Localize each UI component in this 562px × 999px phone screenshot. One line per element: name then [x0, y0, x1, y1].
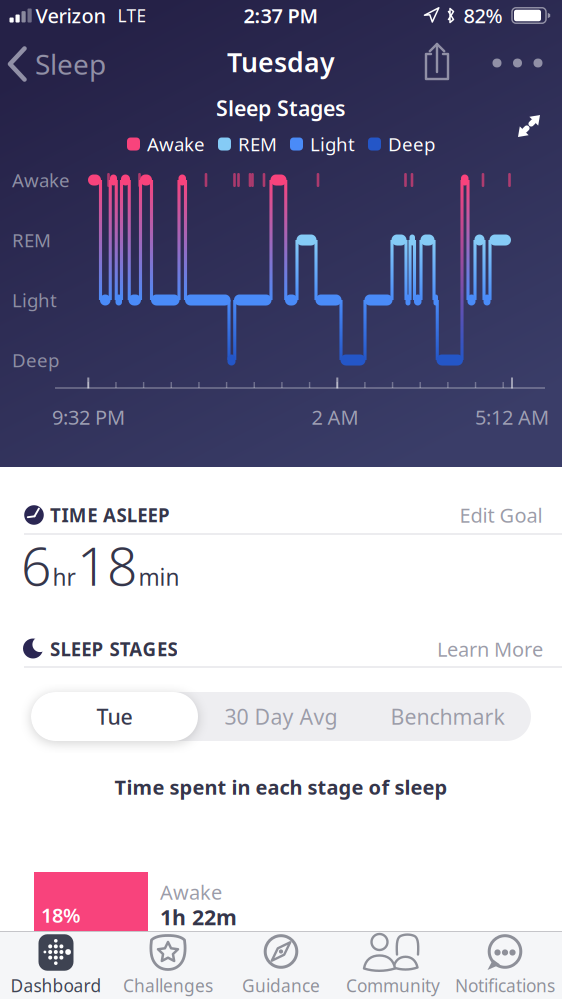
button[interactable] — [513, 110, 545, 142]
staticText: Learn More — [437, 636, 543, 662]
staticText: 1h 22m — [160, 903, 237, 931]
staticText: Light — [310, 132, 355, 156]
staticText: 18 — [77, 530, 137, 600]
button[interactable]: Community — [337, 932, 449, 998]
staticText: Challenges — [123, 974, 213, 997]
staticText: Sleep Stages — [216, 94, 346, 122]
staticText: 30 Day Avg — [224, 702, 337, 731]
staticText: REM — [12, 228, 51, 252]
staticText: min — [138, 562, 179, 592]
staticText: 6 — [21, 530, 51, 600]
staticText: hr — [52, 562, 75, 592]
staticText: 2:37 PM — [243, 2, 318, 29]
staticText: Light — [12, 288, 57, 312]
button[interactable] — [419, 39, 455, 87]
staticText: 9:32 PM — [52, 404, 125, 430]
staticText: SLEEP STAGES — [50, 637, 177, 661]
staticText: Awake — [12, 168, 70, 192]
staticText: Tuesday — [227, 44, 335, 80]
button[interactable]: Challenges — [112, 932, 224, 998]
button[interactable]: Dashboard — [0, 932, 112, 998]
button[interactable] — [492, 58, 542, 67]
button[interactable]: Guidance — [225, 932, 337, 998]
button[interactable]: Learn More — [437, 636, 543, 662]
button[interactable]: Tue — [31, 692, 198, 741]
button[interactable]: Edit Goal — [459, 502, 542, 528]
staticText: Community — [346, 974, 440, 997]
staticText: 18% — [41, 902, 81, 928]
staticText: Benchmark — [390, 702, 504, 731]
button[interactable]: 30 Day Avg — [198, 692, 364, 741]
staticText: Awake — [147, 132, 205, 156]
staticText: Sleep — [35, 45, 106, 83]
button[interactable]: Notifications — [449, 932, 561, 998]
staticText: Awake — [160, 879, 222, 905]
button[interactable]: Benchmark — [364, 692, 531, 741]
staticText: Dashboard — [10, 974, 101, 997]
staticText: 5:12 AM — [475, 404, 549, 430]
staticText: Edit Goal — [459, 502, 542, 528]
staticText: Time spent in each stage of sleep — [114, 774, 447, 800]
staticText: TIME ASLEEP — [50, 503, 170, 527]
staticText: Tue — [96, 702, 132, 731]
staticText: Deep — [12, 348, 59, 372]
staticText: Guidance — [242, 974, 320, 997]
staticText: 2 AM — [311, 404, 358, 430]
staticText: Deep — [388, 132, 435, 156]
button[interactable]: Sleep — [8, 45, 106, 83]
staticText: 82% — [463, 2, 502, 29]
staticText: Notifications — [455, 974, 555, 997]
staticText: Verizon — [35, 2, 106, 29]
staticText: REM — [238, 132, 277, 156]
staticText: LTE — [117, 4, 146, 27]
